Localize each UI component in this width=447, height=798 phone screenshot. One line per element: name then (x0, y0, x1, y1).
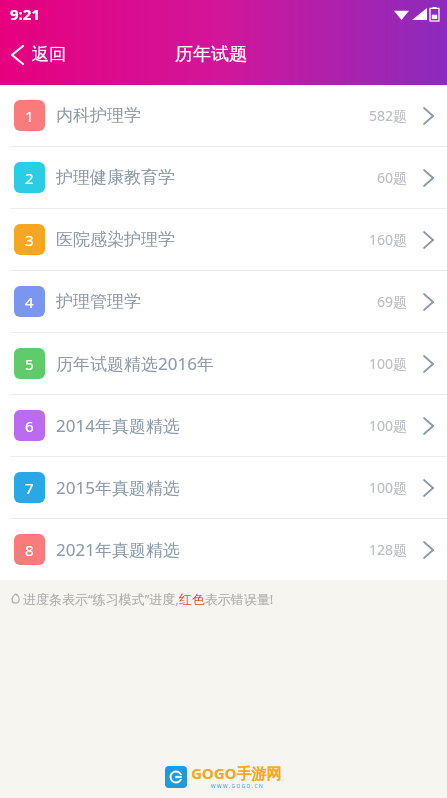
staticText: 100题 (369, 354, 408, 373)
button[interactable]: 1 (0, 85, 447, 146)
staticText: 5 (25, 354, 34, 374)
staticText: 2015年真题精选 (56, 476, 180, 499)
staticText: 128题 (369, 540, 408, 559)
button[interactable]: 7 (0, 457, 447, 518)
staticText: 护理管理学 (56, 291, 141, 312)
button[interactable]: 6 (0, 395, 447, 456)
staticText: W W W . G O G O . C N (211, 783, 263, 790)
staticText: 100题 (369, 416, 408, 435)
staticText: 100题 (369, 478, 408, 497)
staticText: 6 (25, 416, 34, 436)
staticText: 医院感染护理学 (56, 229, 175, 250)
button[interactable]: 返回 (0, 38, 78, 71)
staticText: 1 (25, 106, 34, 126)
button[interactable]: 5 (0, 333, 447, 394)
staticText: 7 (25, 478, 34, 498)
staticText: 8 (25, 540, 34, 560)
button[interactable]: 4 (0, 271, 447, 332)
staticText: 160题 (369, 230, 408, 249)
staticText: GOGO手游网 (191, 763, 282, 783)
staticText: 69题 (377, 292, 408, 311)
button[interactable]: 8 (0, 519, 447, 580)
staticText: 2021年真题精选 (56, 538, 180, 561)
staticText: 3 (25, 230, 34, 250)
staticText: 60题 (377, 168, 408, 187)
staticText: 内科护理学 (56, 105, 141, 126)
staticText: 4 (25, 292, 34, 312)
staticText: 历年试题 (175, 43, 247, 66)
staticText: 进度条表示“练习模式”进度,红色表示错误量! (23, 590, 274, 608)
staticText: 582题 (369, 106, 408, 125)
button[interactable]: 2 (0, 147, 447, 208)
button[interactable]: 3 (0, 209, 447, 270)
staticText: 2014年真题精选 (56, 414, 180, 437)
staticText: 历年试题精选2016年 (56, 352, 214, 375)
staticText: 9:21 (10, 4, 40, 24)
staticText: 返回 (32, 44, 66, 65)
staticText: 护理健康教育学 (56, 167, 175, 188)
staticText: 2 (25, 168, 34, 188)
